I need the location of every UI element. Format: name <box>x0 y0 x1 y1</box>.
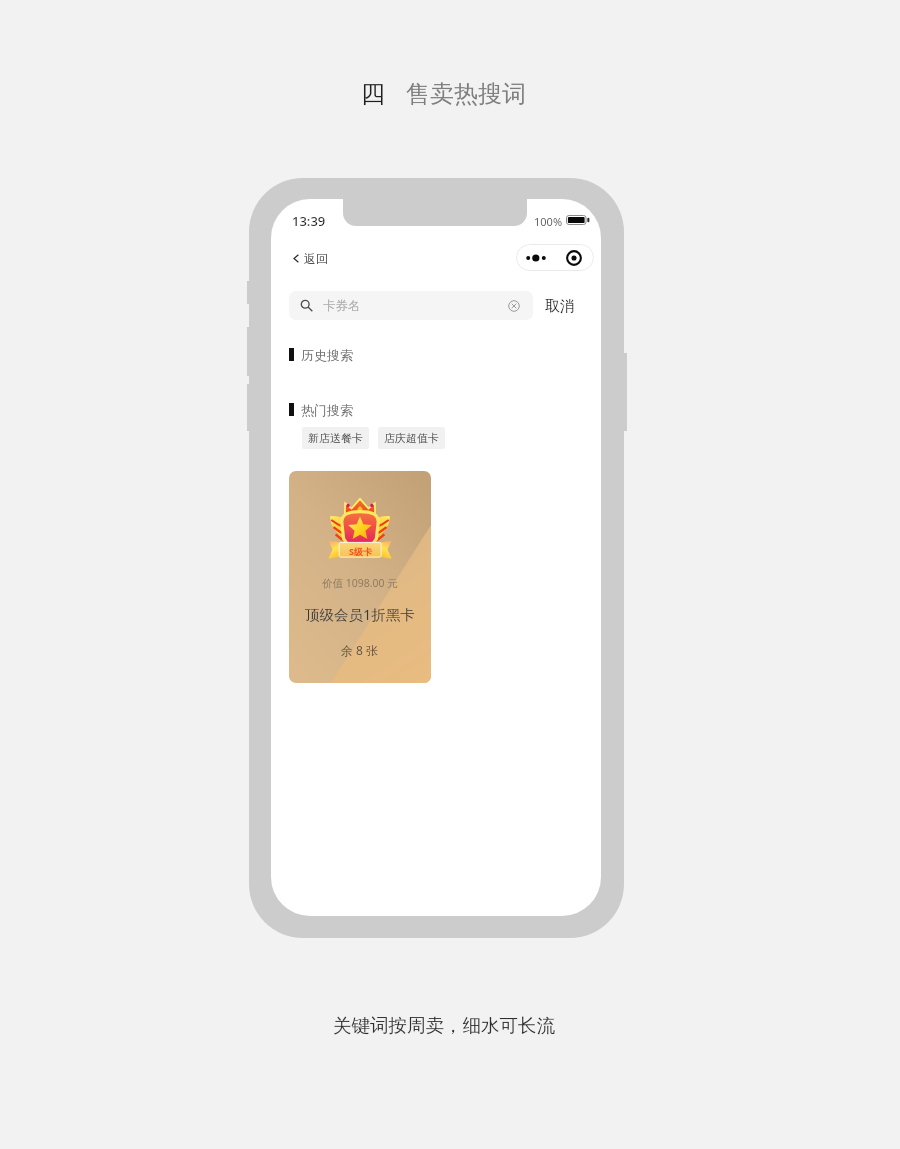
button[interactable]: 新店送餐卡 <box>302 427 369 449</box>
staticText: 返回 <box>304 251 328 266</box>
staticText: 热门搜索 <box>301 402 353 418</box>
button[interactable]: 取消 <box>540 294 580 318</box>
staticText: 100% <box>534 214 563 229</box>
button[interactable]: 返回 <box>291 246 337 270</box>
button[interactable]: S级卡 <box>289 471 431 683</box>
staticText: 店庆超值卡 <box>384 431 439 445</box>
staticText: 历史搜索 <box>301 347 353 363</box>
staticText: 价值 1098.00 元 <box>322 576 398 590</box>
staticText: 取消 <box>545 297 575 316</box>
button[interactable]: Clear text <box>508 300 520 312</box>
staticText: 新店送餐卡 <box>308 431 363 445</box>
staticText: 四 <box>361 79 385 109</box>
staticText: 卡券名 <box>323 298 361 314</box>
button[interactable]: 店庆超值卡 <box>378 427 445 449</box>
staticText: S级卡 <box>349 545 372 557</box>
button[interactable]: 卡券名 <box>289 291 533 320</box>
staticText: 余 8 张 <box>341 642 379 658</box>
staticText: 顶级会员1折黑卡 <box>305 604 415 624</box>
staticText: 关键词按周卖，细水可长流 <box>333 1014 555 1037</box>
staticText: 售卖热搜词 <box>406 79 526 109</box>
button[interactable]: Mini program menu <box>516 244 594 271</box>
staticText: 13:39 <box>292 212 326 230</box>
